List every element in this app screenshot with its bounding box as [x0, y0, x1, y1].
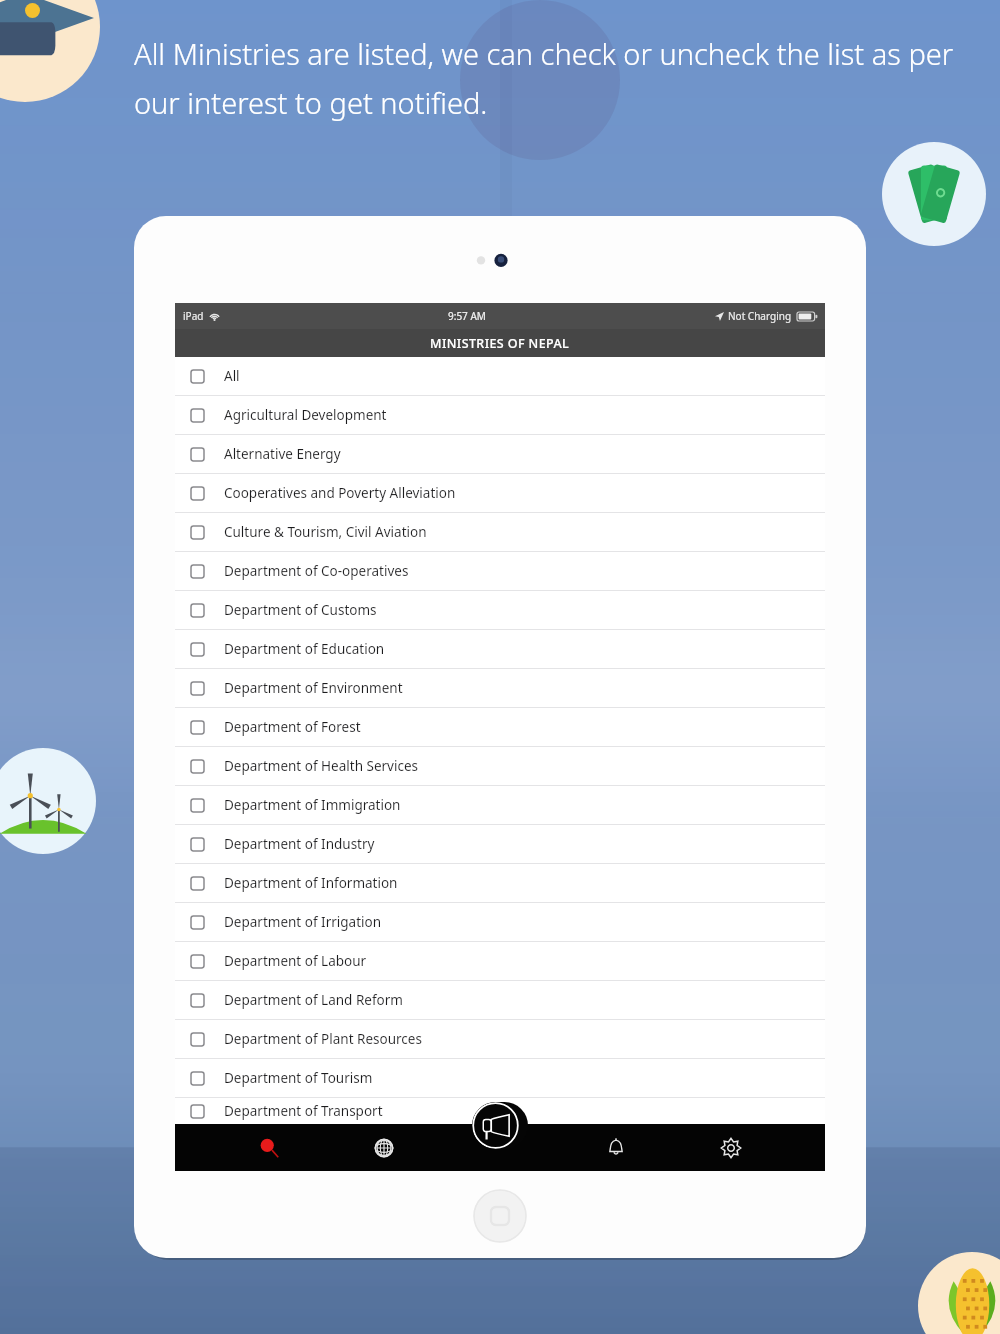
button[interactable]: Department of Customs	[175, 591, 825, 630]
staticText: All	[224, 367, 240, 385]
staticText: MINISTRIES OF NEPAL	[430, 335, 570, 352]
button[interactable]: Department of Immigration	[175, 786, 825, 825]
button[interactable]: All	[175, 357, 825, 396]
button[interactable]: Notifications	[594, 1126, 638, 1170]
button[interactable]: Department of Information	[175, 864, 825, 903]
staticText: Agricultural Development	[224, 406, 387, 424]
button[interactable]: Department of Forest	[175, 708, 825, 747]
button[interactable]: Department of Co-operatives	[175, 552, 825, 591]
staticText: Department of Transport	[224, 1102, 383, 1120]
staticText: Department of Information	[224, 874, 398, 892]
staticText: 9:57 AM	[448, 309, 486, 323]
button[interactable]: Department of Environment	[175, 669, 825, 708]
button[interactable]: Department of Transport	[175, 1098, 825, 1124]
staticText: Department of Co-operatives	[224, 562, 409, 580]
staticText: Not Charging	[728, 309, 792, 323]
staticText: Cooperatives and Poverty Alleviation	[224, 484, 456, 502]
staticText: Alternative Energy	[224, 445, 341, 463]
button[interactable]: Alternative Energy	[175, 435, 825, 474]
staticText: Department of Health Services	[224, 757, 418, 775]
button[interactable]: Department of Health Services	[175, 747, 825, 786]
button[interactable]: Agricultural Development	[175, 396, 825, 435]
button[interactable]: Department of Irrigation	[175, 903, 825, 942]
button[interactable]: Department of Education	[175, 630, 825, 669]
button[interactable]: Announcements	[472, 1102, 528, 1149]
button[interactable]: Browse	[362, 1126, 406, 1170]
button[interactable]: Settings	[709, 1126, 753, 1170]
button[interactable]: Search	[247, 1126, 291, 1170]
staticText: Department of Labour	[224, 952, 367, 970]
staticText: Department of Environment	[224, 679, 403, 697]
staticText: Department of Education	[224, 640, 385, 658]
staticText: Department of Tourism	[224, 1069, 373, 1087]
button[interactable]: Culture & Tourism, Civil Aviation	[175, 513, 825, 552]
button[interactable]: Department of Labour	[175, 942, 825, 981]
staticText: Department of Customs	[224, 601, 377, 619]
button[interactable]: Department of Tourism	[175, 1059, 825, 1098]
staticText: iPad	[183, 309, 204, 323]
staticText: All Ministries are listed, we can check …	[134, 34, 960, 123]
staticText: Department of Immigration	[224, 796, 401, 814]
button[interactable]: Department of Land Reform	[175, 981, 825, 1020]
staticText: Department of Land Reform	[224, 991, 403, 1009]
staticText: Culture & Tourism, Civil Aviation	[224, 523, 427, 541]
button[interactable]: Department of Plant Resources	[175, 1020, 825, 1059]
staticText: Department of Irrigation	[224, 913, 382, 931]
staticText: Department of Forest	[224, 718, 361, 736]
button[interactable]: Cooperatives and Poverty Alleviation	[175, 474, 825, 513]
staticText: Department of Plant Resources	[224, 1030, 422, 1048]
staticText: Department of Industry	[224, 835, 375, 853]
button[interactable]: Department of Industry	[175, 825, 825, 864]
